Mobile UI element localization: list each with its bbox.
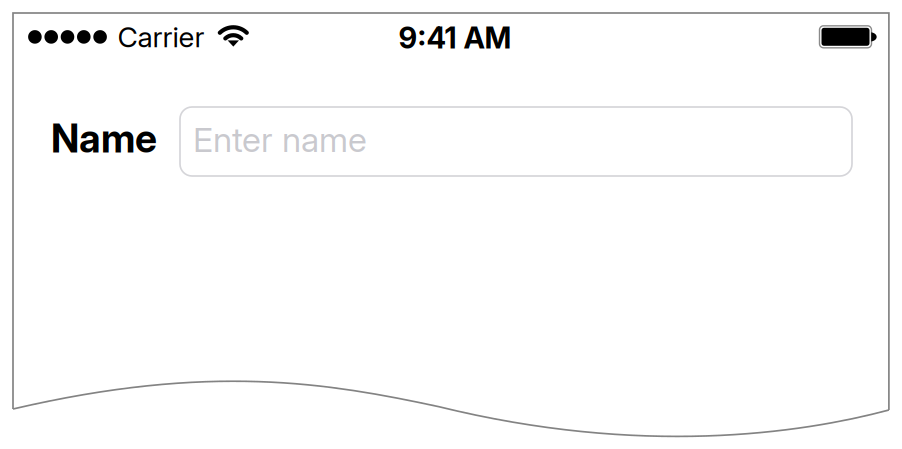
staticText: Name: [51, 115, 157, 162]
button[interactable]: Name, Enter name: [180, 107, 852, 176]
staticText: Carrier: [117, 20, 204, 54]
staticText: Enter name: [193, 119, 367, 160]
staticText: 9:41 AM: [398, 20, 511, 55]
